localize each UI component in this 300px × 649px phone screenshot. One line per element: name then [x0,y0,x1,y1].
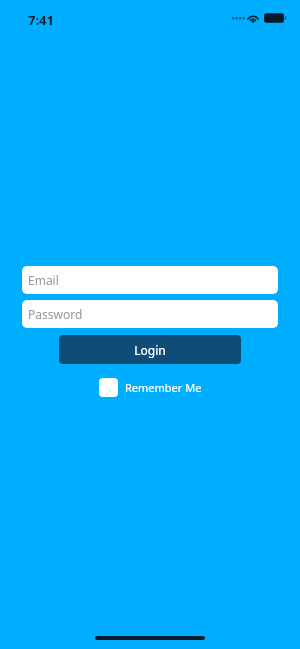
staticText: 7:41 [28,11,54,29]
button[interactable]: Password [22,300,278,328]
staticText: Login [134,342,166,358]
other: Remember Me checkbox [99,378,118,397]
button[interactable]: Remember Me checkbox [99,378,202,397]
button[interactable]: Login [59,335,241,364]
staticText: Password [28,306,83,322]
staticText: Remember Me [125,380,202,395]
staticText: Email [28,272,59,288]
button[interactable]: Email [22,266,278,294]
